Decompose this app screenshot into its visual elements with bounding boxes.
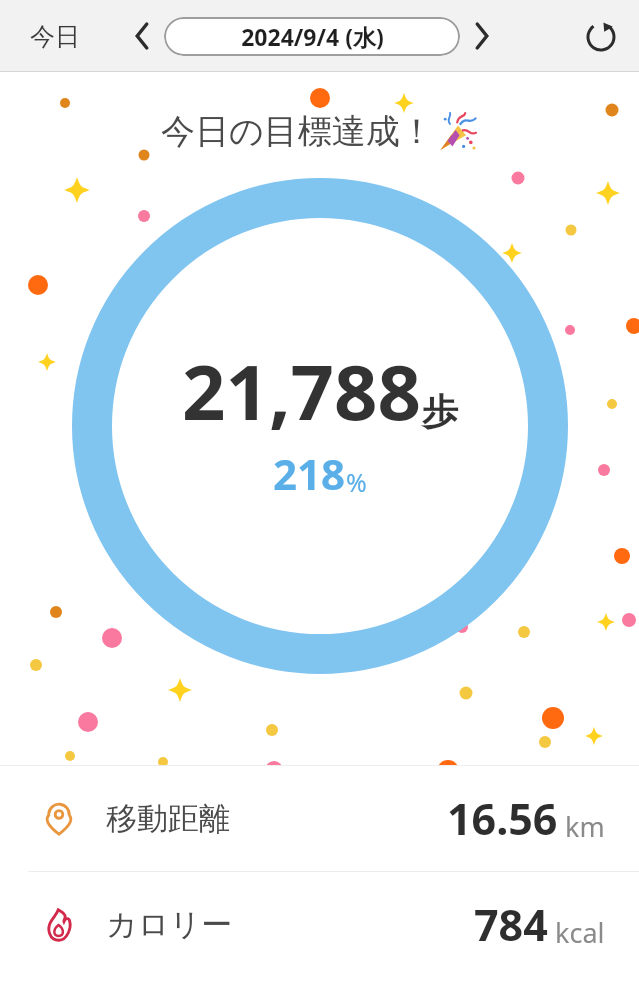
other: Calories: [40, 906, 78, 944]
staticText: 2024/9/4 (水): [241, 21, 384, 52]
staticText: 今日: [30, 21, 80, 52]
button[interactable]: 2024/9/4 (水): [164, 17, 460, 56]
staticText: 218: [273, 445, 346, 502]
staticText: カロリー: [106, 905, 233, 944]
staticText: km: [565, 808, 605, 845]
button[interactable]: Calories: [0, 872, 639, 977]
button[interactable]: Distance: [0, 766, 639, 871]
staticText: 移動距離: [106, 799, 230, 838]
staticText: 今日の目標達成！: [161, 110, 434, 153]
staticText: kcal: [555, 914, 605, 951]
staticText: 歩: [422, 389, 458, 434]
staticText: 16.56: [447, 789, 558, 848]
staticText: 784: [474, 895, 548, 954]
staticText: %: [346, 465, 367, 499]
button[interactable]: Previous day: [122, 16, 162, 56]
button[interactable]: Next day: [462, 16, 502, 56]
other: Distance: [40, 800, 78, 838]
button[interactable]: Refresh: [579, 14, 623, 58]
staticText: 21,788: [182, 339, 422, 443]
button[interactable]: 今日: [22, 15, 88, 58]
